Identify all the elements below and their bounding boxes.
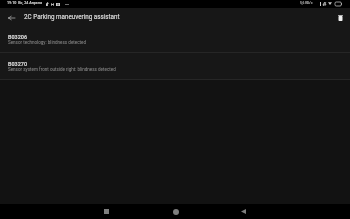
staticText: B03270 [8, 61, 28, 67]
button[interactable]: B03270 [0, 53, 350, 79]
button[interactable]: Delete [331, 8, 349, 26]
button[interactable]: B03206 [0, 26, 350, 52]
button[interactable]: Back [233, 204, 253, 219]
button[interactable]: Home [166, 204, 186, 219]
staticText: 19:10 Вс, 24 Апреля [7, 1, 43, 5]
staticText: Sensor technology: blindness detected [8, 40, 350, 45]
staticText: 2C Parking maneuvering assistant [24, 13, 120, 20]
button[interactable]: Recent apps [96, 204, 116, 219]
button[interactable]: Back [1, 8, 21, 26]
staticText: B03206 [8, 34, 28, 40]
staticText: 5,6 КБ/с [300, 1, 313, 5]
staticText: Sensor system front outside right: blind… [8, 67, 350, 72]
